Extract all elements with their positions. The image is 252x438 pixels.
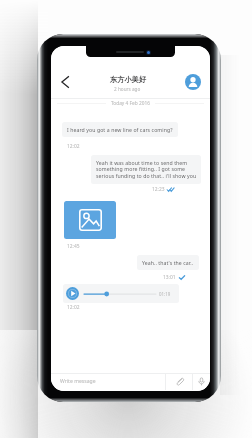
button[interactable]: Yeah it was about time to send them some… [91, 155, 201, 184]
button[interactable]: Contact profile [185, 74, 201, 90]
button[interactable]: Photo [64, 201, 116, 239]
staticText: 13:01 [163, 274, 176, 281]
staticText: 东方小美好 [110, 75, 146, 84]
staticText: 12:02 [67, 304, 80, 311]
staticText: Yeah.. that's the car.. [142, 259, 194, 266]
staticText: 12:45 [67, 243, 80, 250]
staticText: Today 4 Feb 2016 [111, 100, 150, 107]
button[interactable]: Record voice [193, 373, 210, 390]
button[interactable]: Back [61, 76, 69, 88]
staticText: I heard you got a new line of cars comin… [67, 126, 173, 133]
staticText: 12:23 [152, 186, 165, 193]
button[interactable]: I heard you got a new line of cars comin… [62, 122, 178, 137]
staticText: 2 hours ago [114, 86, 141, 92]
button[interactable]: Voice message [63, 284, 179, 303]
button[interactable]: Write message [51, 373, 165, 390]
button[interactable]: Yeah.. that's the car.. [137, 255, 199, 270]
staticText: 01:19 [159, 291, 171, 297]
staticText: Write message [60, 378, 96, 385]
staticText: 12:02 [67, 143, 80, 150]
button[interactable]: Attach file [166, 373, 192, 390]
staticText: Yeah it was about time to send them some… [96, 159, 196, 180]
